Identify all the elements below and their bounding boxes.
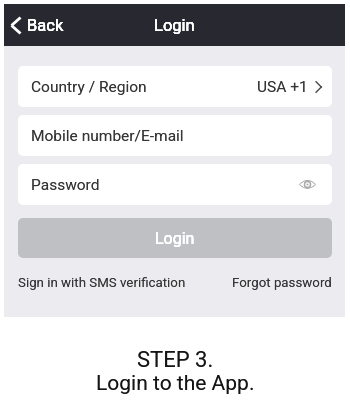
other: Show password (299, 179, 316, 190)
staticText: Login to the App. (96, 371, 255, 396)
staticText: Country / Region (31, 78, 147, 96)
staticText: Back (27, 16, 64, 35)
button[interactable]: Country / Region (18, 66, 332, 107)
button[interactable]: Password (18, 164, 332, 205)
staticText: Country / Region (31, 78, 147, 96)
button[interactable]: Sign in with SMS verification (18, 275, 186, 291)
staticText: Forgot password (232, 275, 332, 291)
staticText: Login (155, 229, 195, 248)
staticText: USA +1 (257, 78, 308, 96)
button[interactable]: Back (4, 11, 72, 40)
staticText: Sign in with SMS verification (18, 275, 186, 291)
staticText: Password (31, 176, 100, 194)
staticText: Forgot password (232, 275, 332, 291)
button[interactable]: Login (18, 218, 332, 258)
staticText: Back (27, 16, 64, 35)
staticText: Mobile number/E-mail (31, 127, 184, 145)
staticText: STEP 3. (137, 347, 214, 373)
staticText: Mobile number/E-mail (31, 127, 184, 145)
button[interactable]: Mobile number/E-mail (18, 115, 332, 156)
staticText: Password (31, 176, 100, 194)
staticText: USA +1 (257, 78, 308, 96)
staticText: Login (154, 16, 195, 35)
other: Back (10, 16, 22, 35)
staticText: STEP 3. (137, 347, 214, 373)
staticText: Login (155, 229, 195, 248)
button[interactable]: Forgot password (232, 275, 332, 291)
staticText: Login to the App. (96, 371, 255, 396)
staticText: Login (154, 16, 195, 35)
staticText: Sign in with SMS verification (18, 275, 186, 291)
